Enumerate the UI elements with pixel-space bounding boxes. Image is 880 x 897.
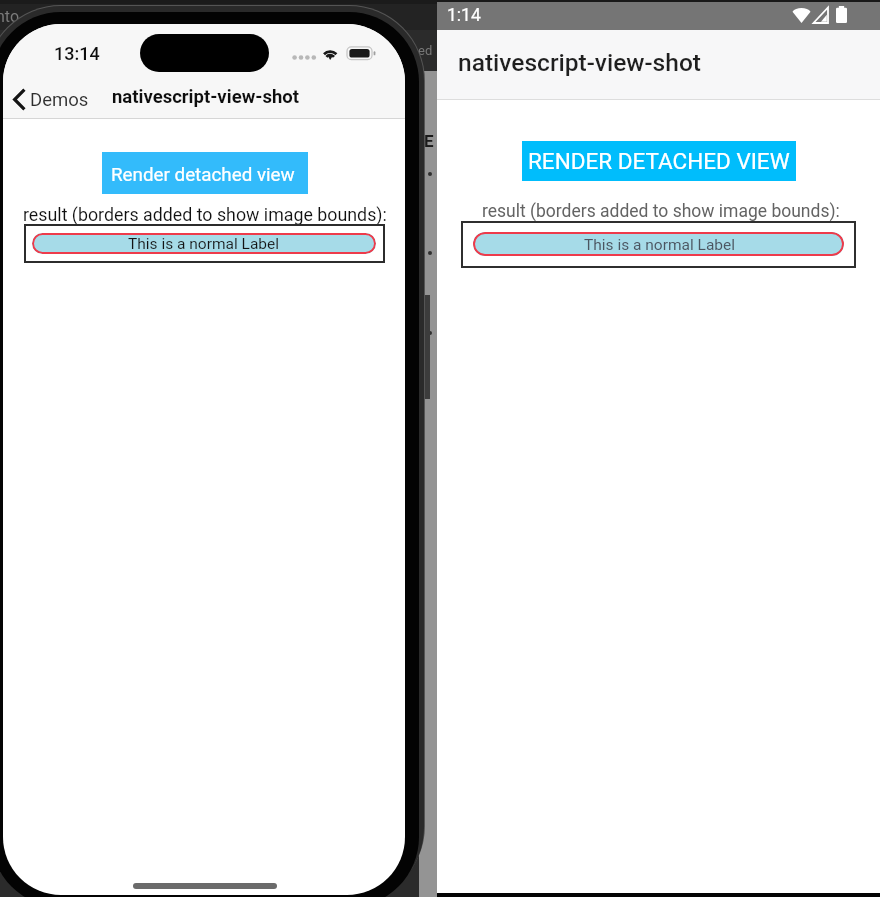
staticText: nativescript-view-shot [458,48,701,77]
button[interactable]: Render detached view [102,152,308,194]
staticText: This is a normal Label [584,236,736,254]
staticText: nto [0,7,20,26]
button[interactable]: RENDER DETACHED VIEW [522,141,796,181]
staticText: result (borders added to show image boun… [482,201,840,222]
staticText: E [424,131,434,151]
staticText: ed [418,43,433,58]
staticText: Demos [30,89,89,111]
staticText: This is a normal Label [128,235,280,253]
staticText: 13:14 [54,43,100,64]
staticText: nativescript-view-shot [112,86,299,108]
staticText: 1:14 [447,5,481,26]
button[interactable]: Back to Demos [7,84,99,116]
staticText: result (borders added to show image boun… [23,204,387,225]
staticText: Render detached view [111,164,295,186]
staticText: RENDER DETACHED VIEW [528,148,790,174]
